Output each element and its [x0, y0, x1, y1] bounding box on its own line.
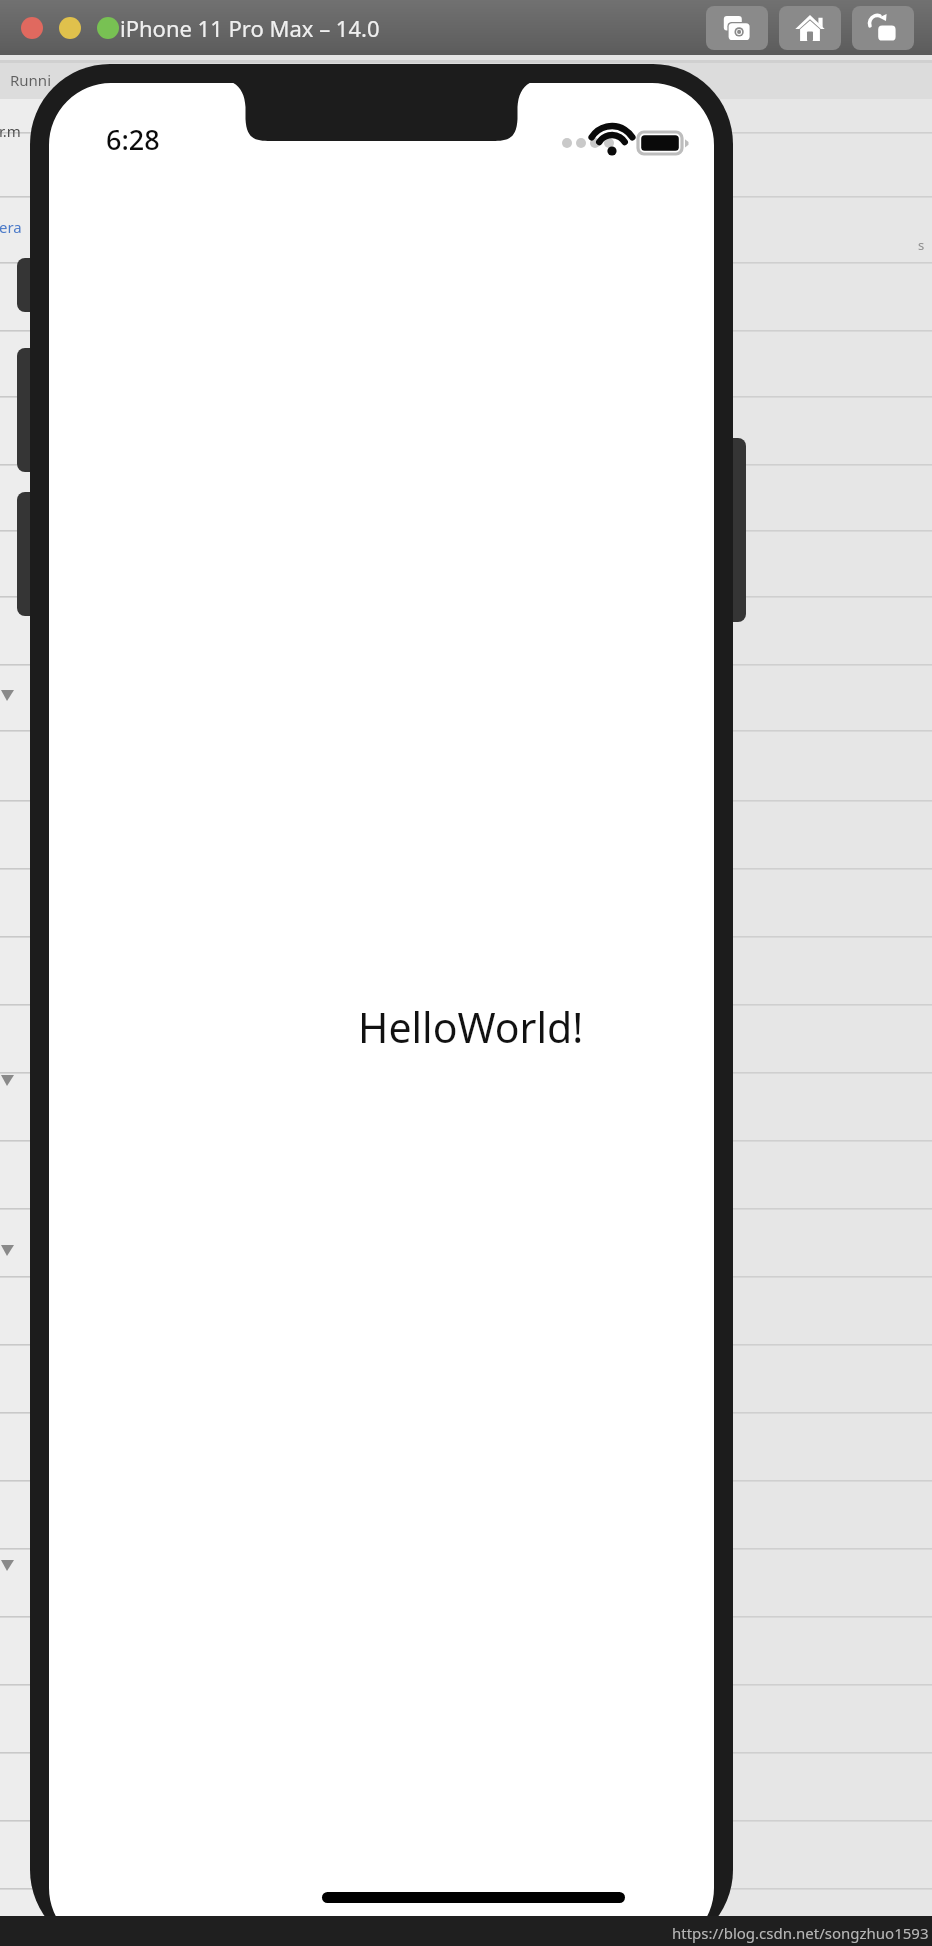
staticText: https://blog.csdn.net/songzhuo1593 [672, 1923, 929, 1943]
button[interactable]: Minimize [59, 17, 81, 39]
staticText: s [918, 236, 925, 254]
staticText: Runni [10, 70, 52, 90]
staticText: iPhone 11 Pro Max – 14.0 [120, 13, 380, 43]
button[interactable]: Home [779, 6, 841, 50]
button[interactable]: Take screenshot [706, 6, 768, 50]
button[interactable]: HelloWorld! [358, 999, 584, 1055]
button[interactable]: Rotate [852, 6, 914, 50]
button[interactable]: Close [21, 17, 43, 39]
staticText: r.m [0, 121, 21, 141]
staticText: era [0, 217, 22, 237]
button[interactable]: Zoom [97, 17, 119, 39]
staticText: 6:28 [106, 121, 160, 158]
